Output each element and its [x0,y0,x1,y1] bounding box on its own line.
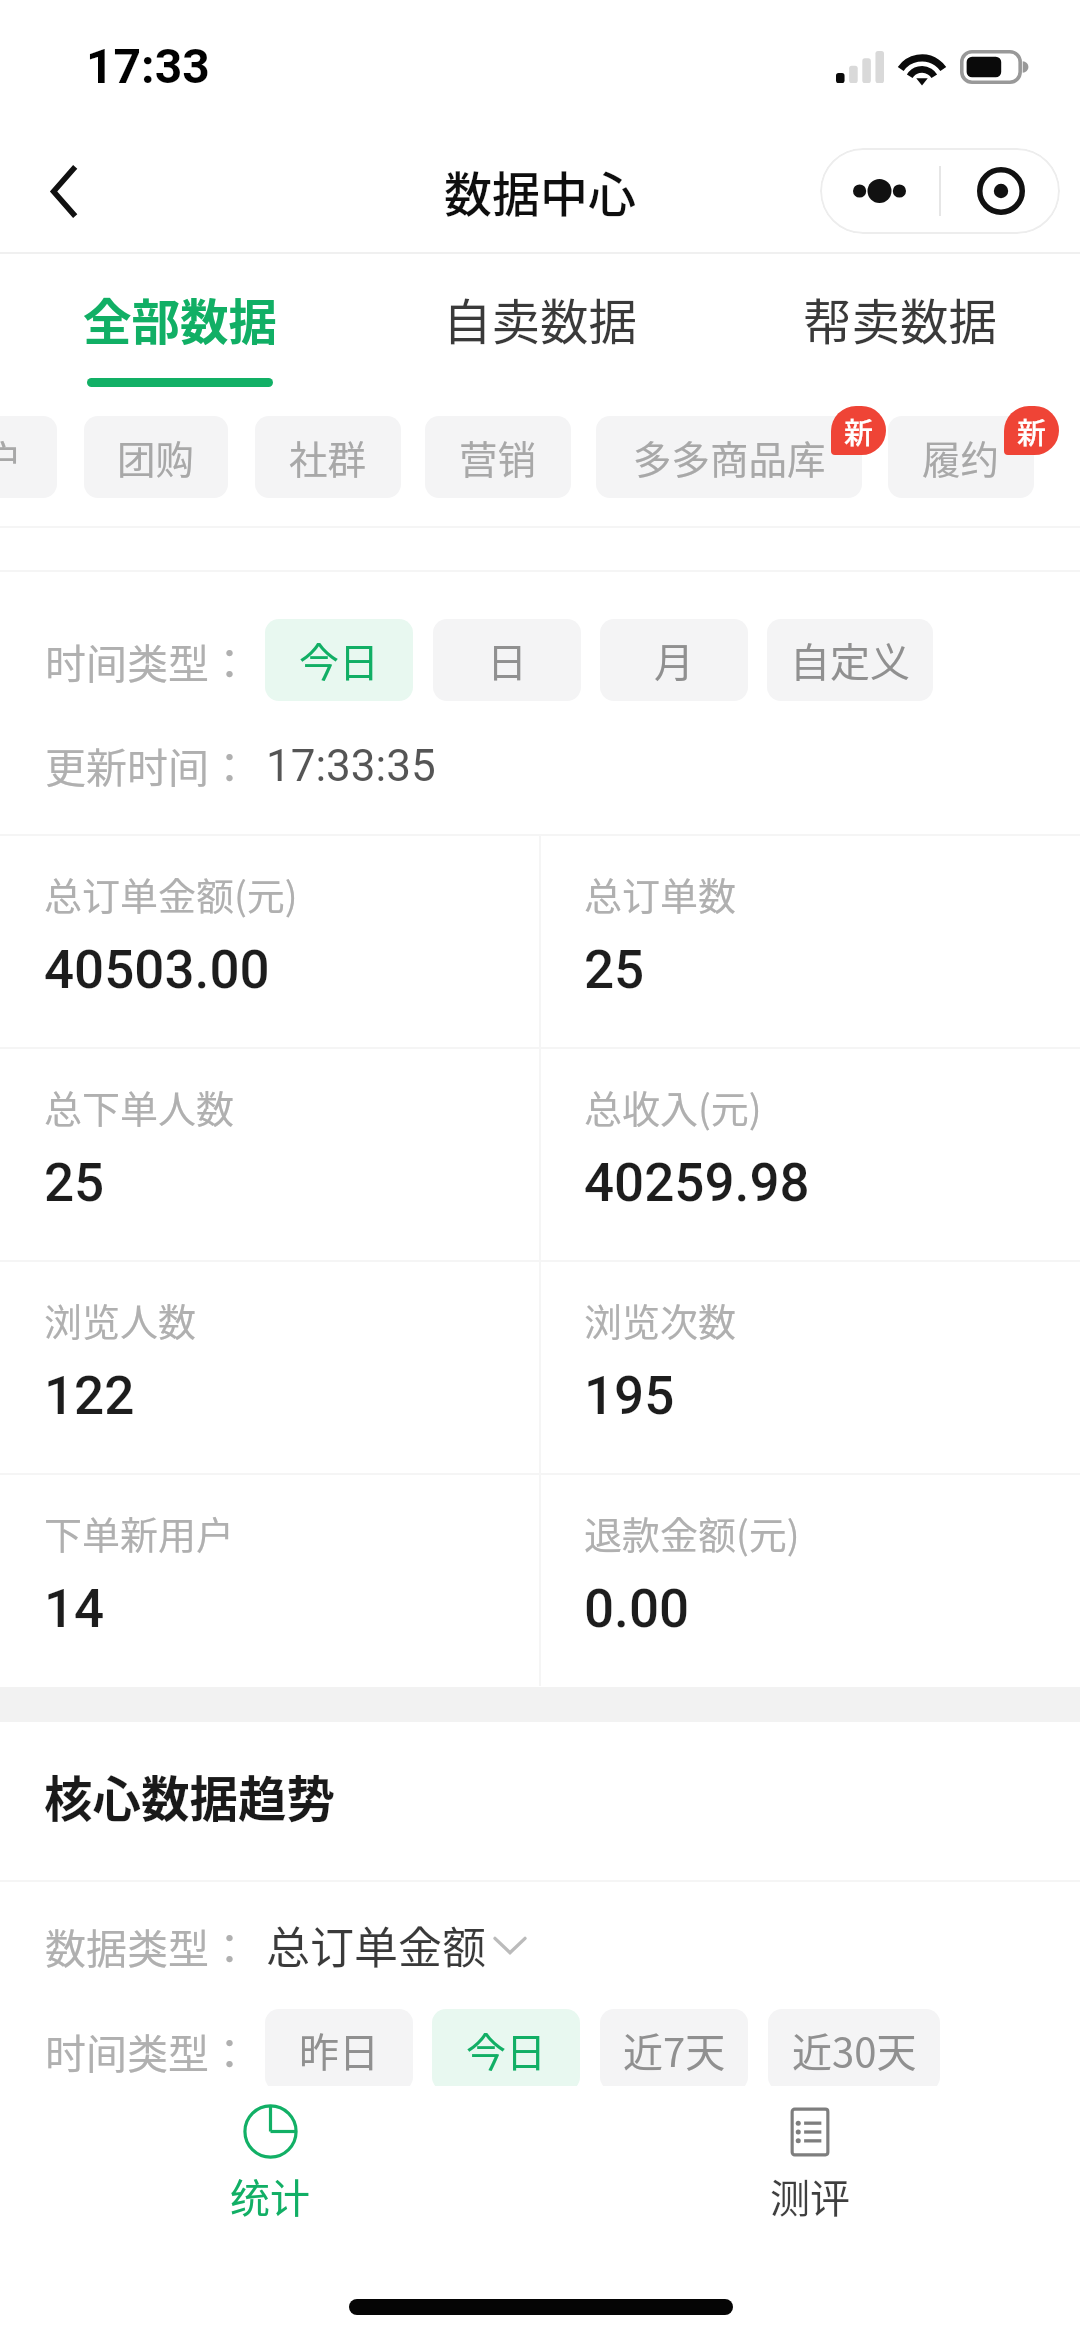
button[interactable]: 浏览次数 [540,1260,1080,1473]
button[interactable]: 总收入(元) [540,1047,1080,1260]
staticText: 近7天 [623,2021,726,2079]
staticText: 总订单数 [584,866,737,921]
button[interactable]: 社群 [255,416,401,498]
button[interactable]: 退款金额(元) [540,1473,1080,1686]
button[interactable]: 全部数据 [0,256,360,396]
staticText: 测评 [770,2167,850,2225]
button[interactable]: 昨日 [265,2009,413,2091]
staticText: 17:33:35 [266,740,436,792]
button[interactable]: 总订单数 [540,834,1080,1047]
staticText: 下单新用户 [44,1505,235,1560]
button[interactable]: 浏览人数 [0,1260,540,1473]
staticText: 0.00 [584,1578,690,1640]
staticText: 月 [654,631,694,689]
staticText: 40259.98 [584,1152,810,1214]
button[interactable]: 自卖数据 [360,256,720,396]
button[interactable]: 近7天 [600,2009,748,2091]
button[interactable]: 测评 [540,2086,1080,2266]
staticText: 时间类型： [45,2021,250,2080]
staticText: 更新时间： [45,735,250,791]
staticText: 总订单金额(元) [44,866,298,921]
button[interactable]: 团购 [84,416,228,498]
staticText: 自定义 [790,631,910,689]
button[interactable]: 日 [433,619,581,701]
button[interactable]: 近30天 [768,2009,940,2091]
staticText: 195 [584,1365,675,1427]
button[interactable]: 月 [600,619,748,701]
button[interactable]: More options [820,148,1060,234]
staticText: 浏览人数 [44,1292,197,1347]
button[interactable]: 营销 [425,416,571,498]
staticText: 全部数据 [83,284,278,354]
staticText: 自卖数据 [443,284,638,354]
staticText: 退款金额(元) [584,1505,800,1560]
button[interactable]: 履约 [888,416,1034,498]
button[interactable]: 总订单金额 [266,1913,526,1977]
staticText: 数据中心 [444,156,637,226]
button[interactable]: 帮卖数据 [720,256,1080,396]
staticText: 今日 [299,631,379,689]
staticText: 40503.00 [44,939,270,1001]
staticText: 统计 [230,2167,310,2225]
staticText: 帮卖数据 [803,284,998,354]
staticText: 总订单金额 [266,1913,486,1977]
button[interactable]: 多多商品库 [596,416,862,498]
staticText: 新 [1017,410,1047,452]
staticText: 17:33 [86,38,210,94]
staticText: 客户 [0,429,23,485]
staticText: 团购 [117,429,195,485]
button[interactable]: 今日 [265,619,413,701]
staticText: 多多商品库 [633,429,826,485]
staticText: 总收入(元) [584,1079,762,1134]
staticText: 履约 [922,429,1000,485]
staticText: 今日 [466,2021,546,2079]
button[interactable]: Back [16,143,112,239]
staticText: 社群 [289,429,367,485]
staticText: 浏览次数 [584,1292,737,1347]
staticText: 14 [44,1578,105,1640]
button[interactable]: 自定义 [767,619,933,701]
staticText: 近30天 [792,2021,917,2079]
staticText: 122 [44,1365,135,1427]
staticText: 营销 [459,429,537,485]
button[interactable]: 今日 [432,2009,580,2091]
button[interactable]: 统计 [0,2086,540,2266]
staticText: 总下单人数 [44,1079,235,1134]
staticText: 25 [44,1152,105,1214]
staticText: 数据类型： [45,1916,250,1975]
staticText: 时间类型： [45,631,250,690]
staticText: 25 [584,939,645,1001]
staticText: 新 [844,410,874,452]
staticText: 昨日 [299,2021,379,2079]
staticText: 核心数据趋势 [44,1761,336,1831]
staticText: 日 [487,631,527,689]
button[interactable]: 总订单金额(元) [0,834,540,1047]
button[interactable]: 总下单人数 [0,1047,540,1260]
button[interactable]: 客户 [0,416,57,498]
button[interactable]: 下单新用户 [0,1473,540,1686]
